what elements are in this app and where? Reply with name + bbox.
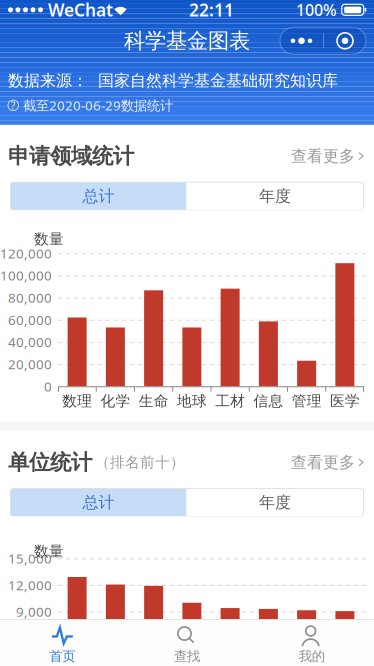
staticText: 单位统计 xyxy=(8,449,92,475)
button[interactable]: 我的 xyxy=(249,620,374,666)
staticText: 40,000 xyxy=(8,333,52,351)
staticText: 化学 xyxy=(100,392,130,410)
button[interactable]: 查看更多 xyxy=(291,452,364,472)
staticText: 数量 xyxy=(34,542,64,560)
staticText: 管理 xyxy=(292,392,322,410)
staticText: （排名前十） xyxy=(95,453,185,471)
staticText: 申请领域统计 xyxy=(8,143,134,169)
button[interactable]: 首页 xyxy=(0,620,125,666)
staticText: 15,000 xyxy=(8,550,52,567)
staticText: 总计 xyxy=(82,186,114,206)
staticText: 数量 xyxy=(34,230,64,248)
staticText: 截至2020-06-29数据统计 xyxy=(23,96,173,114)
staticText: 年度 xyxy=(259,493,291,512)
staticText: 0 xyxy=(44,377,52,395)
staticText: 地球 xyxy=(177,392,207,410)
button[interactable]: More options xyxy=(280,27,366,54)
staticText: 100% xyxy=(296,0,337,20)
staticText: 数理 xyxy=(62,392,92,410)
staticText: 20,000 xyxy=(8,355,52,373)
staticText: 年度 xyxy=(259,186,291,206)
staticText: 12,000 xyxy=(8,576,52,594)
staticText: 生命 xyxy=(139,392,169,410)
button[interactable]: 总计 xyxy=(10,182,186,210)
staticText: 80,000 xyxy=(8,289,52,306)
staticText: 我的 xyxy=(299,648,325,664)
button[interactable]: 年度 xyxy=(186,488,363,516)
staticText: 总计 xyxy=(82,493,114,512)
staticText: 数据来源： 国家自然科学基金基础研究知识库 xyxy=(8,71,338,90)
staticText: 首页 xyxy=(49,648,75,664)
button[interactable]: 查看更多 xyxy=(291,146,364,166)
button[interactable]: 查找 xyxy=(125,620,249,666)
staticText: 120,000 xyxy=(0,244,52,262)
staticText: WeChat xyxy=(48,0,113,21)
staticText: 22:11 xyxy=(189,0,234,21)
staticText: 查找 xyxy=(174,648,200,664)
button[interactable]: 年度 xyxy=(186,182,363,210)
staticText: 9,000 xyxy=(16,603,52,620)
staticText: 医学 xyxy=(330,392,360,410)
staticText: 查看更多 xyxy=(291,452,355,472)
staticText: 查看更多 xyxy=(291,146,355,166)
staticText: 信息 xyxy=(253,392,283,410)
staticText: 科学基金图表 xyxy=(124,28,250,54)
staticText: 60,000 xyxy=(8,311,52,329)
staticText: ? xyxy=(11,98,16,112)
staticText: 100,000 xyxy=(0,266,52,284)
button[interactable]: 总计 xyxy=(10,488,186,516)
staticText: 工材 xyxy=(215,392,245,410)
